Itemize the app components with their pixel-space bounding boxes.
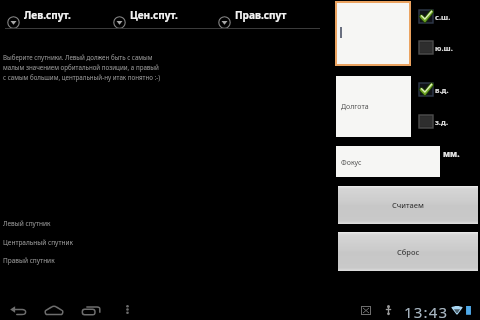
button[interactable]: Сброс xyxy=(338,232,478,271)
staticText: Сброс xyxy=(397,247,420,257)
staticText: Лев.спут. xyxy=(24,8,71,22)
staticText: Цен.спут. xyxy=(130,8,178,22)
button[interactable] xyxy=(335,1,411,66)
staticText: Долгота xyxy=(341,102,369,112)
button[interactable]: Recent apps xyxy=(74,301,108,320)
staticText: с.ш. xyxy=(435,12,451,22)
button[interactable]: ю.ш. xyxy=(419,41,453,54)
button[interactable]: More options xyxy=(115,299,139,320)
staticText: ю.ш. xyxy=(435,43,453,53)
button[interactable]: с.ш. xyxy=(419,10,451,23)
button[interactable]: Долгота xyxy=(336,76,411,137)
staticText: Прав.спут xyxy=(235,8,287,22)
button[interactable]: Считаем xyxy=(338,186,478,224)
staticText: Считаем xyxy=(392,200,424,210)
staticText: Правый спутник xyxy=(3,256,55,265)
button[interactable]: Back xyxy=(1,301,35,320)
staticText: Выберите спутники. Левый должен быть с с… xyxy=(3,53,183,82)
staticText: в.д. xyxy=(435,85,449,95)
button[interactable]: з.д. xyxy=(419,115,449,128)
button[interactable]: Лев.спут. xyxy=(5,8,111,29)
button[interactable]: Home xyxy=(37,301,71,320)
staticText: 13:43 xyxy=(404,302,449,320)
button[interactable]: Цен.спут. xyxy=(111,8,217,29)
staticText: Левый спутник xyxy=(3,219,51,228)
button[interactable]: Прав.спут xyxy=(216,8,322,29)
staticText: Центральный спутник xyxy=(3,238,73,247)
staticText: з.д. xyxy=(435,117,449,127)
button[interactable]: Фокус xyxy=(336,146,440,177)
staticText: Фокус xyxy=(341,158,362,168)
staticText: мм. xyxy=(443,148,460,160)
button[interactable]: в.д. xyxy=(419,83,449,96)
